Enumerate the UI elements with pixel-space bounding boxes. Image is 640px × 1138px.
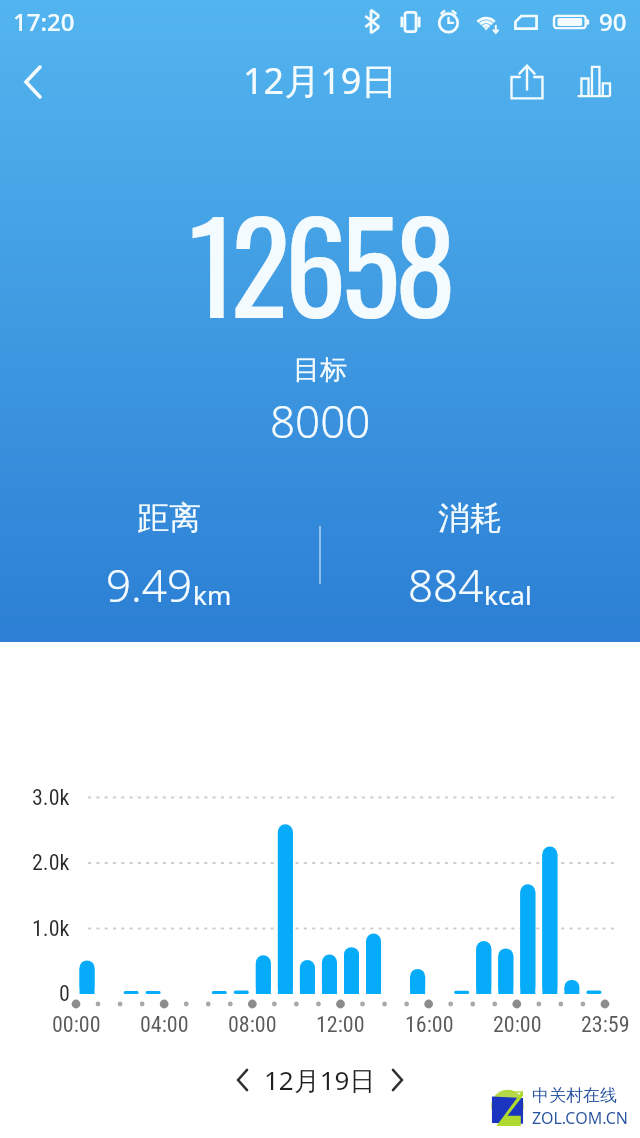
button[interactable]: Back [0,49,66,115]
staticText: 3.0k [32,785,70,811]
staticText: 距离 [137,498,201,538]
staticText: 目标 [293,353,347,387]
staticText: 消耗 [438,498,502,538]
staticText: 90 [599,5,627,38]
staticText: 中关村在线 [532,1085,617,1106]
staticText: 16:00 [405,1012,454,1038]
staticText: 12月19日 [243,56,398,105]
button[interactable]: 12月19日 [256,1062,384,1098]
staticText: 12:00 [316,1012,365,1038]
staticText: 23:59 [581,1012,630,1038]
staticText: kcal [484,577,532,612]
staticText: 08:00 [228,1012,277,1038]
staticText: 0 [59,981,70,1007]
button[interactable]: Previous day [229,1058,256,1102]
staticText: 20:00 [493,1012,542,1038]
staticText: 12658 [189,170,451,354]
staticText: 00:00 [52,1012,101,1038]
staticText: km [193,577,232,612]
staticText: ZOL.COM.CN [532,1107,628,1129]
button[interactable]: Share [493,50,560,114]
staticText: 17:20 [13,5,75,38]
staticText: 8000 [270,391,371,451]
staticText: 1.0k [32,916,70,942]
staticText: 9.49 [106,555,193,615]
button[interactable]: Statistics [560,50,627,114]
staticText: 2.0k [32,850,70,876]
staticText: 884 [408,555,484,615]
button[interactable]: Next day [384,1058,411,1102]
staticText: 04:00 [140,1012,189,1038]
